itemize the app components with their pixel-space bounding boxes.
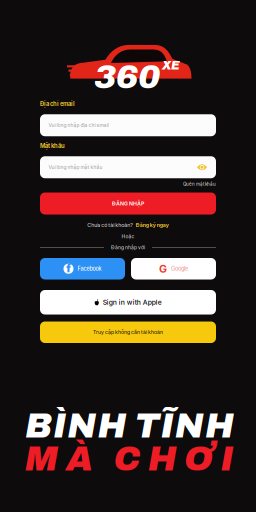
staticText: f (66, 262, 71, 275)
staticText: Quên mật khẩu (183, 181, 216, 187)
button[interactable]: f (40, 258, 125, 279)
staticText: Địa chỉ email (40, 100, 75, 107)
staticText: Mật khẩu (40, 142, 65, 149)
staticText: MÀ CHƠI (25, 440, 233, 478)
staticText: XE (162, 59, 180, 72)
button[interactable]: G (131, 258, 216, 279)
staticText: Sign in with Apple (103, 298, 162, 306)
button[interactable]: Truy cập không cần tài khoản (40, 321, 216, 343)
button[interactable]: Đăng ký ngay (136, 222, 169, 228)
staticText: Hoặc (121, 233, 134, 239)
button[interactable]: ĐĂNG NHẬP (40, 192, 216, 214)
staticText: Vui lòng nhập mật khẩu (48, 164, 102, 170)
staticText: Google (171, 265, 188, 272)
staticText: Facebook (77, 265, 101, 272)
staticText: G (159, 262, 167, 275)
staticText: Truy cập không cần tài khoản (93, 329, 163, 335)
staticText: Chưa có tài khoản? (87, 222, 133, 228)
button[interactable]: Sign in with Apple (40, 290, 216, 314)
staticText: 360 (94, 59, 160, 95)
staticText: Vui lòng nhập địa chỉ email (48, 122, 108, 128)
staticText: Đăng nhập với (111, 244, 145, 250)
button[interactable]: Quên mật khẩu (183, 181, 216, 187)
staticText: ĐĂNG NHẬP (112, 200, 144, 207)
staticText: BÌNH TĨNH (25, 407, 234, 445)
staticText: Đăng ký ngay (136, 222, 169, 228)
